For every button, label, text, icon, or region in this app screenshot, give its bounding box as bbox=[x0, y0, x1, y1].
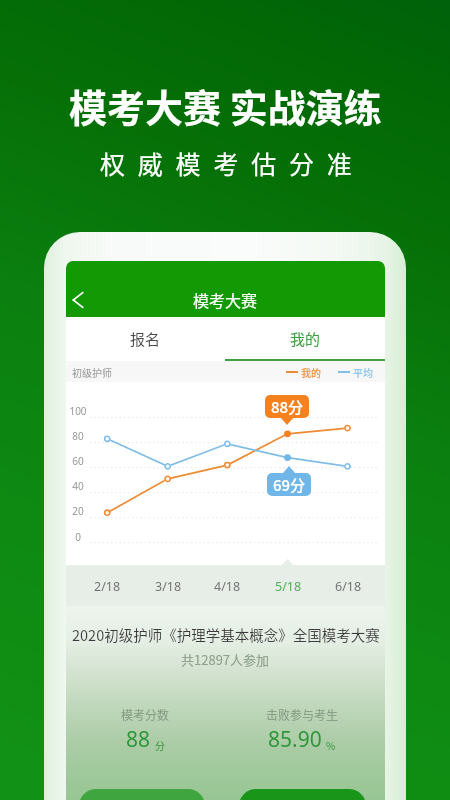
button[interactable]: 3/18 bbox=[138, 568, 198, 604]
staticText: 6/18 bbox=[335, 578, 362, 595]
staticText: 85.90 bbox=[268, 725, 322, 754]
staticText: 平均 bbox=[353, 365, 373, 379]
staticText: 0 bbox=[66, 530, 92, 544]
staticText: 2/18 bbox=[94, 578, 121, 595]
staticText: 模考大赛 bbox=[193, 288, 258, 311]
staticText: 60 bbox=[66, 454, 92, 468]
staticText: 共12897人参加 bbox=[181, 650, 270, 669]
button[interactable]: Back bbox=[66, 284, 94, 316]
button[interactable]: 报名 bbox=[66, 317, 225, 361]
button[interactable]: 数据报告 bbox=[79, 789, 205, 800]
staticText: 40 bbox=[66, 479, 92, 493]
button[interactable]: 2/18 bbox=[77, 568, 137, 604]
staticText: 4/18 bbox=[214, 578, 241, 595]
button[interactable]: 模考大赛 bbox=[66, 261, 385, 317]
button[interactable]: 6/18 bbox=[318, 568, 378, 604]
staticText: 模考分数 bbox=[121, 706, 170, 723]
staticText: 3/18 bbox=[155, 578, 182, 595]
button[interactable]: 查看解析 bbox=[239, 789, 366, 800]
staticText: 初级护师 bbox=[72, 365, 112, 379]
staticText: 模考大赛 实战演练 bbox=[69, 78, 382, 133]
staticText: 我的 bbox=[301, 365, 321, 379]
button[interactable]: 我的 bbox=[225, 317, 385, 361]
staticText: 80 bbox=[66, 429, 92, 443]
button[interactable]: 5/18 bbox=[258, 568, 318, 604]
button[interactable]: 4/18 bbox=[197, 568, 257, 604]
staticText: 分 bbox=[155, 738, 165, 752]
staticText: 报名 bbox=[130, 328, 161, 350]
staticText: 2020初级护师《护理学基本概念》全国模考大赛 bbox=[72, 624, 380, 645]
staticText: 权威模考估分准 bbox=[100, 145, 365, 181]
staticText: 20 bbox=[66, 504, 92, 518]
staticText: 100 bbox=[66, 404, 92, 418]
staticText: 我的 bbox=[290, 328, 321, 350]
staticText: 88 bbox=[126, 725, 151, 754]
staticText: 88分 bbox=[271, 396, 304, 418]
staticText: 5/18 bbox=[275, 578, 302, 595]
staticText: 69分 bbox=[273, 474, 306, 496]
staticText: 击败参与考生 bbox=[266, 706, 339, 723]
staticText: % bbox=[326, 738, 336, 752]
